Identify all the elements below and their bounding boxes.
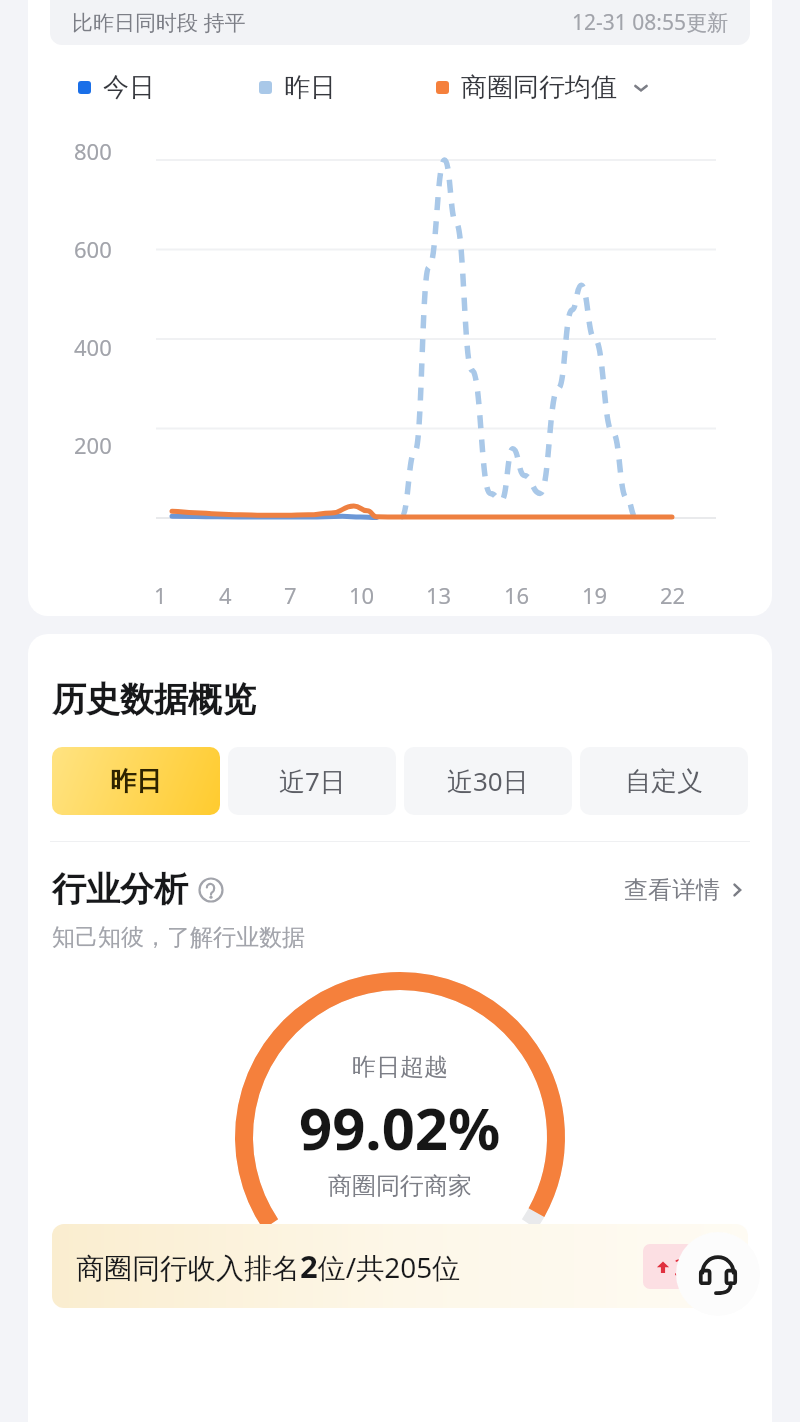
button[interactable]: 昨日 (52, 747, 220, 815)
staticText: 22 (660, 580, 686, 610)
staticText: 19 (582, 580, 608, 610)
staticText: 400 (74, 332, 112, 362)
button[interactable]: 近7日 (228, 747, 396, 815)
staticText: 比昨日同时段 持平 (72, 8, 246, 37)
staticText: 99.02% (299, 1088, 501, 1167)
staticText: 16 (504, 580, 530, 610)
staticText: 昨日 (284, 71, 336, 104)
staticText: 知己知彼，了解行业数据 (52, 923, 305, 952)
button[interactable]: 自定义 (580, 747, 748, 815)
staticText: 800 (74, 136, 112, 166)
button[interactable]: 商圈同行均值 (436, 71, 651, 104)
button[interactable]: 近30日 (404, 747, 572, 815)
staticText: 3位 (674, 1250, 712, 1283)
staticText: 昨日 (110, 765, 162, 798)
staticText: 7 (284, 580, 297, 610)
button[interactable]: 联系客服 (676, 1232, 760, 1316)
button[interactable]: 帮助说明 (198, 877, 224, 903)
staticText: 12-31 08:55更新 (572, 8, 728, 37)
staticText: 商圈同行商家 (328, 1171, 472, 1201)
button[interactable]: 查看详情 (622, 869, 748, 911)
staticText: 近7日 (279, 763, 346, 799)
staticText: 200 (74, 430, 112, 460)
staticText: 行业分析 (52, 868, 188, 911)
staticText: 历史数据概览 (52, 678, 256, 721)
staticText: 商圈同行收入排名2位/共205位 (76, 1245, 461, 1287)
staticText: 4 (219, 580, 232, 610)
staticText: 今日 (103, 71, 155, 104)
button[interactable]: 商圈同行收入排名2位/共205位 (52, 1224, 748, 1308)
staticText: 600 (74, 234, 112, 264)
staticText: 13 (426, 580, 452, 610)
staticText: 自定义 (625, 765, 703, 798)
staticText: 查看详情 (624, 875, 720, 905)
staticText: 近30日 (447, 763, 529, 799)
staticText: 1 (154, 580, 167, 610)
staticText: 商圈同行均值 (461, 71, 617, 104)
staticText: 10 (349, 580, 375, 610)
staticText: 昨日超越 (352, 1052, 448, 1082)
